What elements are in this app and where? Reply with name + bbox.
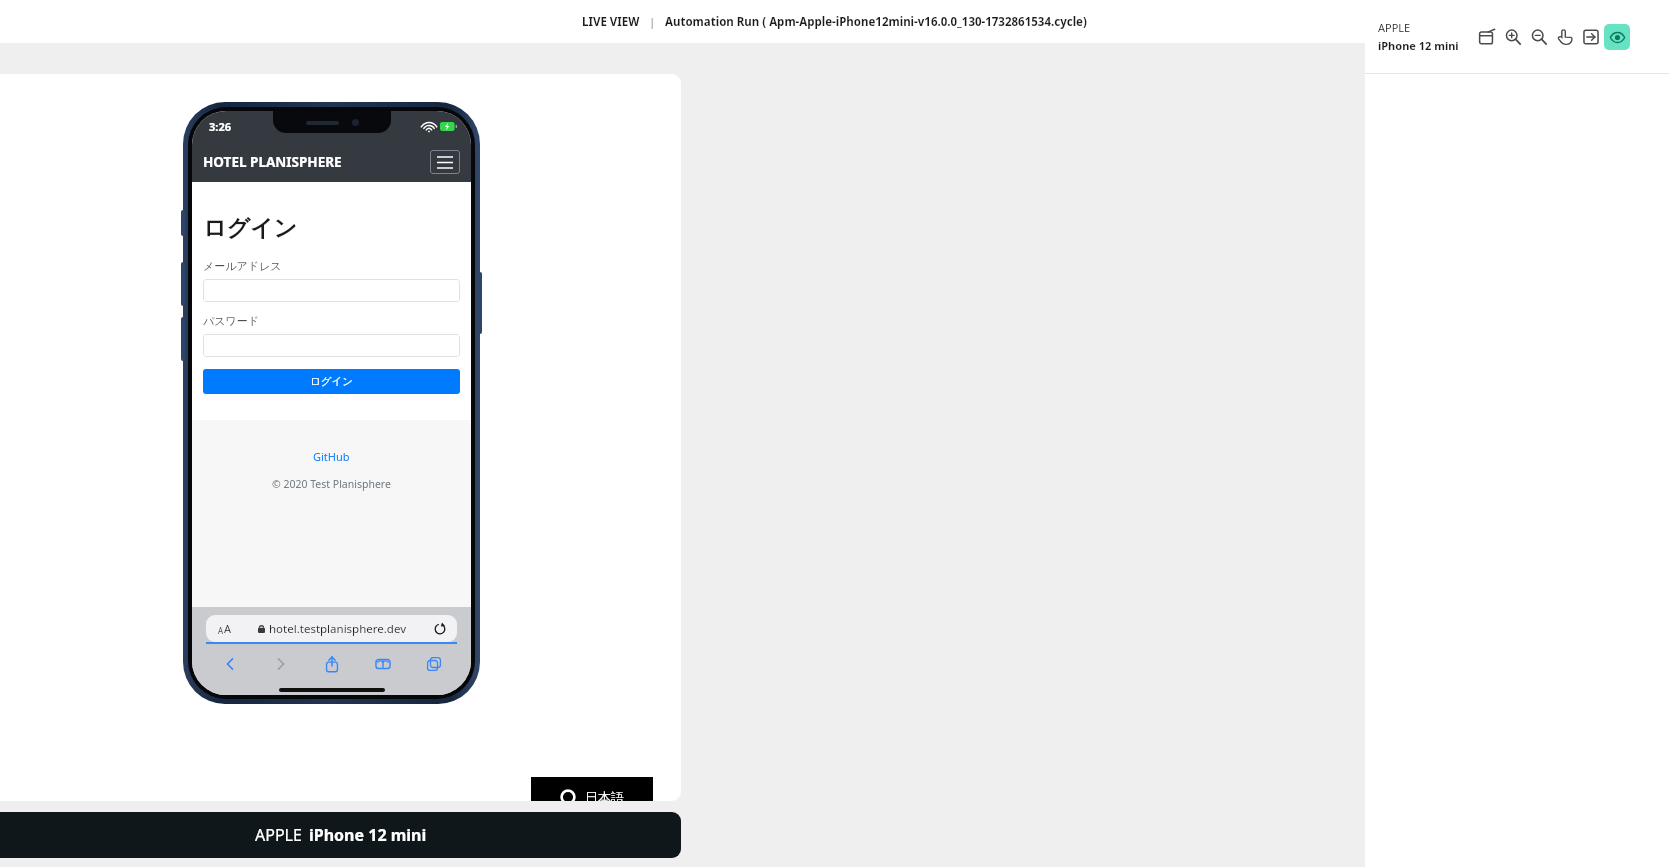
button[interactable]: 日本語 — [531, 777, 653, 801]
staticText: © 2020 Test Planisphere — [272, 477, 391, 491]
button[interactable]: Share — [306, 651, 357, 677]
staticText: iPhone 12 mini — [1378, 38, 1459, 53]
button[interactable]: Forward — [255, 651, 306, 677]
staticText: Automation Run ( Apm-Apple-iPhone12mini-… — [665, 14, 1087, 30]
staticText: iPhone 12 mini — [309, 824, 427, 846]
button[interactable]: Tabs — [408, 651, 459, 677]
button[interactable]: Open in new window — [1474, 24, 1500, 50]
button[interactable]: A — [206, 615, 457, 642]
staticText: APPLE — [255, 824, 302, 846]
staticText: LIVE VIEW — [582, 14, 640, 30]
button[interactable]: Exit — [1578, 24, 1604, 50]
staticText: 日本語 — [585, 789, 624, 801]
button[interactable]: Zoom in — [1500, 24, 1526, 50]
button[interactable] — [203, 279, 460, 302]
button[interactable]: ログイン — [203, 369, 460, 394]
staticText: | — [649, 14, 656, 30]
button[interactable]: Zoom out — [1526, 24, 1552, 50]
staticText: A — [224, 621, 232, 636]
button[interactable]: GitHub — [313, 449, 350, 464]
staticText: A — [218, 625, 224, 636]
staticText: ログイン — [310, 375, 353, 388]
staticText: パスワード — [203, 314, 260, 328]
staticText: HOTEL PLANISPHERE — [203, 153, 342, 171]
staticText: 3:26 — [209, 119, 231, 134]
button[interactable]: Menu — [430, 150, 460, 174]
button[interactable]: Bookmarks — [357, 651, 408, 677]
staticText: ログイン — [203, 214, 298, 243]
button[interactable]: Visual inspect — [1604, 24, 1630, 50]
button[interactable]: Tap mode — [1552, 24, 1578, 50]
button[interactable]: Back — [204, 651, 255, 677]
staticText: メールアドレス — [203, 259, 282, 273]
staticText: GitHub — [313, 449, 350, 464]
staticText: hotel.testplanisphere.dev — [269, 621, 407, 637]
staticText: APPLE — [1378, 20, 1411, 35]
button[interactable] — [203, 334, 460, 357]
button[interactable]: APPLE — [0, 812, 681, 858]
